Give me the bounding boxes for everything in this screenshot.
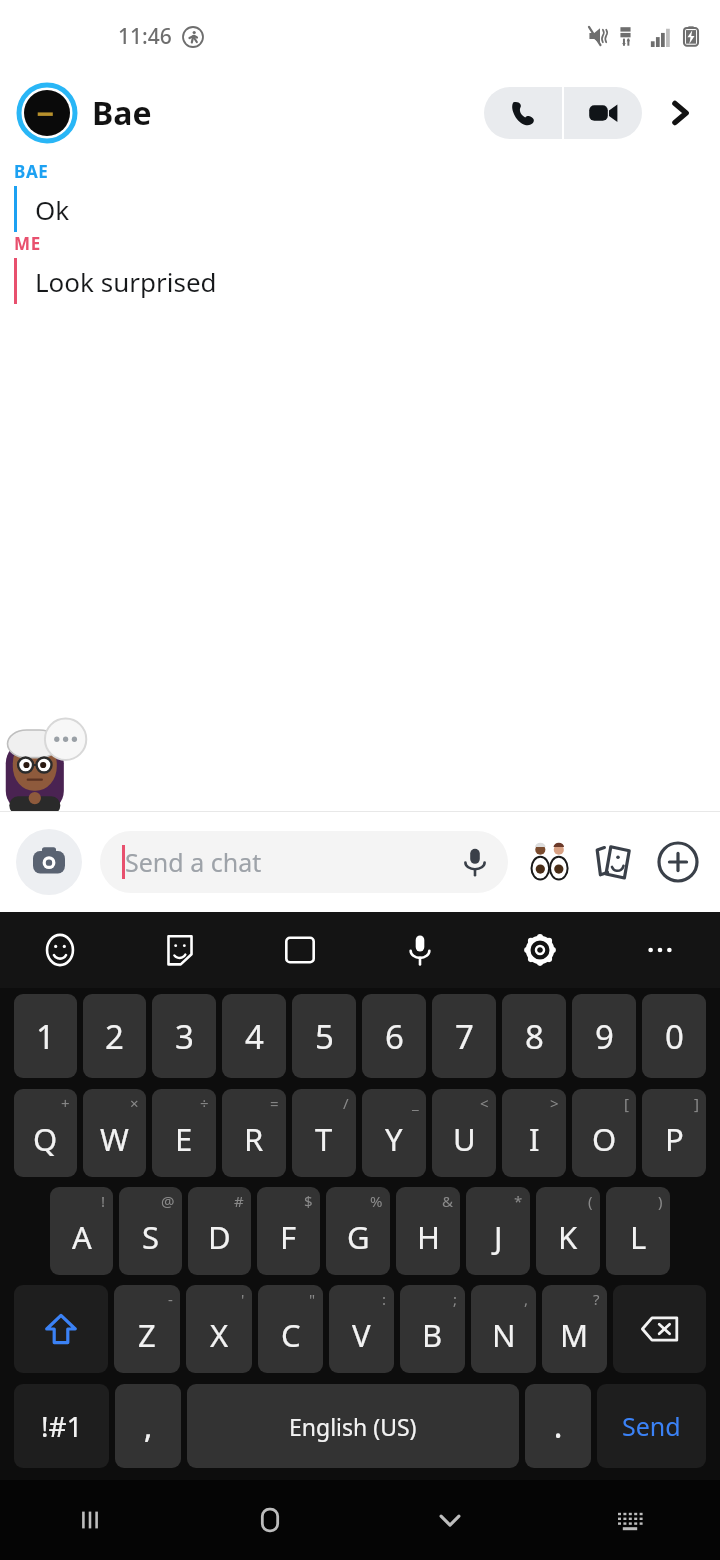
button[interactable]: Friends bbox=[524, 836, 576, 888]
button[interactable]: = bbox=[222, 1089, 286, 1177]
button[interactable]: ? bbox=[542, 1285, 607, 1373]
button[interactable]: / bbox=[292, 1089, 356, 1177]
staticText: 2 bbox=[105, 1014, 124, 1059]
button[interactable]: ! bbox=[50, 1187, 113, 1275]
button[interactable]: ÷ bbox=[152, 1089, 216, 1177]
button[interactable]: 9 bbox=[572, 994, 636, 1078]
button[interactable]: 2 bbox=[83, 994, 146, 1078]
button[interactable]: 7 bbox=[432, 994, 496, 1078]
staticText: [ bbox=[624, 1093, 629, 1113]
button[interactable]: 1 bbox=[14, 994, 77, 1078]
button[interactable]: Home bbox=[180, 1480, 360, 1560]
button[interactable]: Stickers bbox=[588, 836, 640, 888]
button[interactable]: Add bbox=[652, 836, 704, 888]
staticText: ) bbox=[658, 1191, 663, 1211]
staticText: , bbox=[524, 1289, 529, 1309]
staticText: Send a chat bbox=[125, 845, 262, 879]
button[interactable]: Stickers bbox=[120, 912, 240, 988]
staticText: F bbox=[280, 1216, 297, 1258]
button[interactable]: 8 bbox=[502, 994, 566, 1078]
button[interactable]: 6 bbox=[362, 994, 426, 1078]
button[interactable]: @ bbox=[119, 1187, 182, 1275]
button[interactable]: Recents bbox=[0, 1480, 180, 1560]
staticText: / bbox=[343, 1093, 349, 1113]
button[interactable]: . bbox=[525, 1384, 591, 1468]
button[interactable]: Video call bbox=[564, 87, 642, 139]
staticText: 1 bbox=[36, 1014, 55, 1059]
button[interactable]: ; bbox=[400, 1285, 465, 1373]
staticText: * bbox=[514, 1191, 523, 1211]
staticText: - bbox=[168, 1289, 173, 1309]
button[interactable]: Send a chat bbox=[100, 831, 508, 893]
button[interactable]: Backspace bbox=[613, 1285, 706, 1373]
staticText: ME bbox=[14, 232, 41, 255]
button[interactable]: " bbox=[258, 1285, 323, 1373]
button[interactable]: ( bbox=[536, 1187, 600, 1275]
button[interactable]: : bbox=[329, 1285, 394, 1373]
button[interactable]: < bbox=[432, 1089, 496, 1177]
button[interactable]: !#1 bbox=[14, 1384, 109, 1468]
staticText: 4 bbox=[245, 1014, 264, 1059]
button[interactable]: _ bbox=[362, 1089, 426, 1177]
staticText: 5 bbox=[315, 1014, 334, 1059]
button[interactable]: Emoji bbox=[0, 912, 120, 988]
button[interactable]: ' bbox=[186, 1285, 252, 1373]
staticText: D bbox=[208, 1216, 231, 1258]
button[interactable]: & bbox=[396, 1187, 460, 1275]
staticText: , bbox=[144, 1406, 153, 1447]
button[interactable]: * bbox=[466, 1187, 530, 1275]
button[interactable]: Camera bbox=[16, 829, 82, 895]
staticText: ÷ bbox=[200, 1093, 209, 1113]
button[interactable]: Change keyboard bbox=[540, 1480, 720, 1560]
staticText: U bbox=[453, 1118, 476, 1160]
button[interactable]: English (US) bbox=[187, 1384, 519, 1468]
staticText: ! bbox=[101, 1191, 106, 1211]
button[interactable]: , bbox=[115, 1384, 181, 1468]
button[interactable]: Look surprised bbox=[0, 258, 720, 304]
button[interactable]: More options bbox=[600, 912, 720, 988]
staticText: Y bbox=[385, 1118, 403, 1160]
staticText: G bbox=[347, 1216, 370, 1258]
button[interactable]: 4 bbox=[222, 994, 286, 1078]
staticText: 8 bbox=[525, 1014, 544, 1059]
staticText: 11:46 bbox=[118, 22, 172, 51]
staticText: !#1 bbox=[41, 1407, 83, 1445]
button[interactable]: Bae bbox=[92, 91, 152, 135]
button[interactable]: × bbox=[83, 1089, 146, 1177]
button[interactable]: Shift bbox=[14, 1285, 108, 1373]
button[interactable]: % bbox=[326, 1187, 390, 1275]
button[interactable]: Voice call bbox=[484, 87, 562, 139]
button[interactable]: + bbox=[14, 1089, 77, 1177]
staticText: Z bbox=[138, 1314, 156, 1356]
staticText: P bbox=[665, 1118, 684, 1160]
button[interactable]: # bbox=[188, 1187, 251, 1275]
button[interactable]: > bbox=[502, 1089, 566, 1177]
button[interactable]: 5 bbox=[292, 994, 356, 1078]
button[interactable]: 3 bbox=[152, 994, 216, 1078]
button[interactable]: Hide keyboard bbox=[360, 1480, 540, 1560]
staticText: " bbox=[309, 1289, 316, 1309]
button[interactable]: ] bbox=[642, 1089, 706, 1177]
button[interactable]: [ bbox=[572, 1089, 636, 1177]
button[interactable]: 0 bbox=[642, 994, 706, 1078]
staticText: E bbox=[175, 1118, 193, 1160]
staticText: ( bbox=[588, 1191, 593, 1211]
staticText: # bbox=[234, 1191, 244, 1211]
staticText: _ bbox=[412, 1093, 419, 1113]
staticText: 3 bbox=[175, 1014, 194, 1059]
button[interactable]: ) bbox=[606, 1187, 670, 1275]
button[interactable]: Send bbox=[597, 1384, 706, 1468]
button[interactable]: Ok bbox=[0, 186, 720, 232]
staticText: < bbox=[480, 1093, 489, 1113]
staticText: Ok bbox=[35, 192, 70, 227]
staticText: BAE bbox=[14, 160, 49, 183]
button[interactable]: - bbox=[114, 1285, 180, 1373]
button[interactable]: Voice input bbox=[360, 912, 480, 988]
button[interactable]: More bbox=[658, 91, 702, 135]
button[interactable]: GIF bbox=[240, 912, 360, 988]
button[interactable]: $ bbox=[257, 1187, 320, 1275]
button[interactable]: Settings bbox=[480, 912, 600, 988]
staticText: 6 bbox=[385, 1014, 404, 1059]
button[interactable]: , bbox=[471, 1285, 536, 1373]
button[interactable] bbox=[18, 84, 76, 142]
